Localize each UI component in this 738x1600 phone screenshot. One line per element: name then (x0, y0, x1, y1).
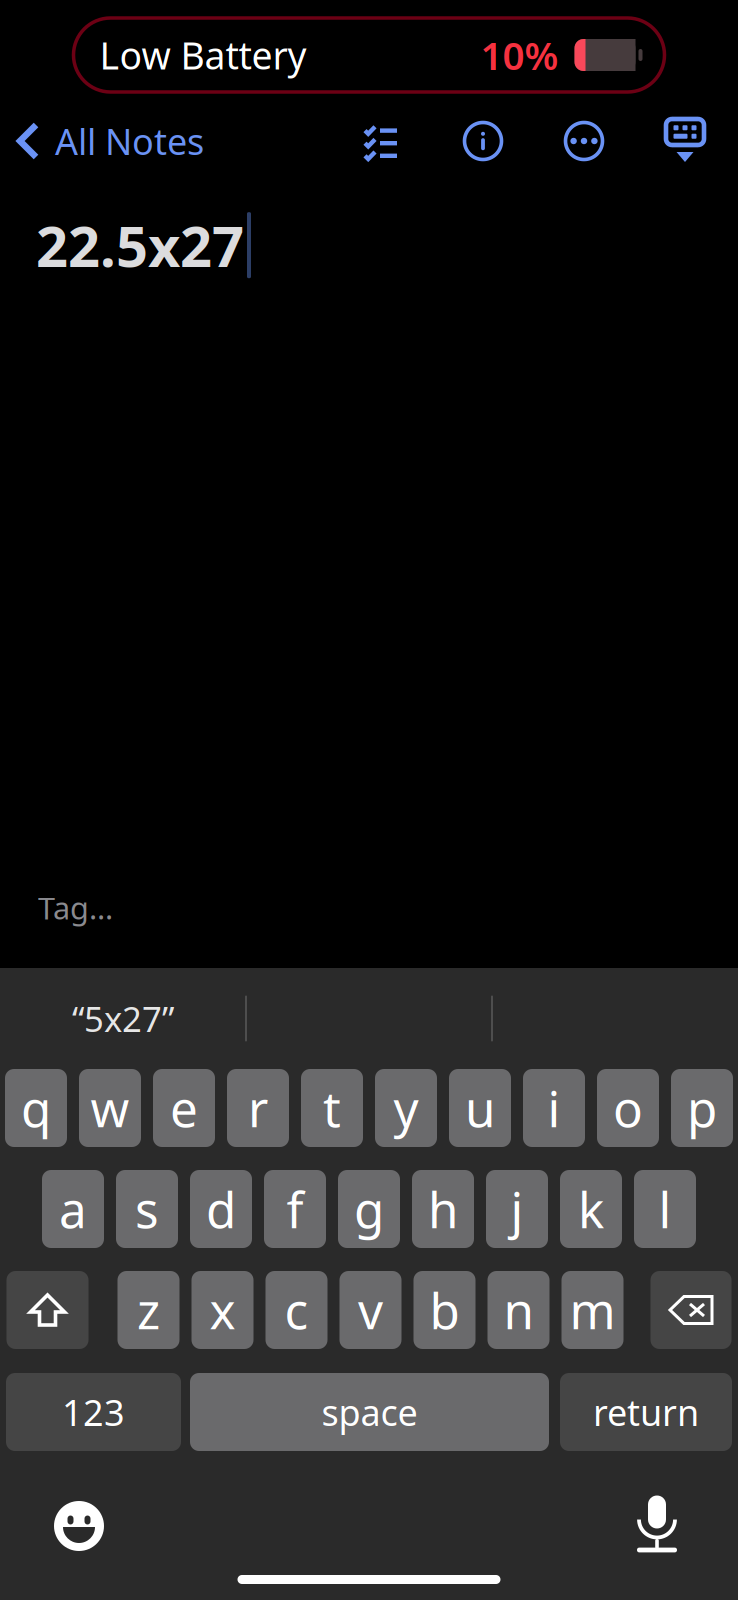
staticText: 10% (480, 29, 558, 81)
staticText: w (90, 1075, 129, 1141)
staticText: All Notes (55, 117, 204, 165)
staticText: n (503, 1277, 533, 1343)
staticText: Tag... (38, 887, 113, 928)
staticText: Low Battery (99, 30, 306, 80)
staticText: s (135, 1176, 159, 1242)
staticText: c (284, 1277, 308, 1343)
staticText: space (321, 1388, 417, 1436)
button[interactable]: Hide Keyboard (658, 114, 712, 168)
button[interactable]: k (560, 1170, 622, 1248)
button[interactable]: b (413, 1271, 475, 1349)
button[interactable]: j (486, 1170, 548, 1248)
staticText: g (354, 1176, 384, 1242)
staticText: i (547, 1075, 560, 1141)
button[interactable]: h (412, 1170, 474, 1248)
button[interactable]: z (117, 1271, 179, 1349)
staticText: 123 (62, 1388, 125, 1436)
staticText: v (358, 1277, 383, 1343)
button[interactable]: Shift (6, 1271, 88, 1349)
staticText: return (593, 1388, 699, 1436)
staticText: m (569, 1277, 615, 1343)
button[interactable]: a (42, 1170, 104, 1248)
button[interactable]: r (227, 1069, 289, 1147)
staticText: “5x27” (72, 995, 174, 1041)
staticText: o (613, 1075, 643, 1141)
button[interactable]: q (5, 1069, 67, 1147)
button[interactable]: y (375, 1069, 437, 1147)
button[interactable]: g (338, 1170, 400, 1248)
button[interactable]: Info (456, 114, 510, 168)
staticText: j (510, 1176, 523, 1242)
button[interactable]: f (264, 1170, 326, 1248)
button[interactable]: c (265, 1271, 327, 1349)
staticText: x (209, 1277, 235, 1343)
button[interactable]: w (79, 1069, 141, 1147)
staticText: f (286, 1176, 303, 1242)
staticText: d (206, 1176, 236, 1242)
staticText: q (21, 1075, 51, 1141)
button[interactable]: More (557, 114, 611, 168)
staticText: a (59, 1176, 87, 1242)
staticText: p (687, 1075, 717, 1141)
button[interactable]: l (634, 1170, 696, 1248)
button[interactable]: d (190, 1170, 252, 1248)
button[interactable]: space (190, 1373, 549, 1451)
staticText: u (465, 1075, 495, 1141)
staticText: z (137, 1277, 160, 1343)
button[interactable]: v (339, 1271, 401, 1349)
button[interactable]: i (523, 1069, 585, 1147)
button[interactable]: t (301, 1069, 363, 1147)
button[interactable]: Dictate (634, 1495, 680, 1557)
button[interactable]: Delete (650, 1271, 731, 1349)
staticText: l (658, 1176, 671, 1242)
staticText: b (429, 1277, 459, 1343)
button[interactable]: p (671, 1069, 733, 1147)
button[interactable]: n (487, 1271, 549, 1349)
button[interactable]: o (597, 1069, 659, 1147)
button[interactable]: 123 (6, 1373, 181, 1451)
button[interactable]: e (153, 1069, 215, 1147)
staticText: h (428, 1176, 458, 1242)
button[interactable]: Emoji (54, 1501, 104, 1551)
staticText: t (323, 1075, 341, 1141)
button[interactable]: All Notes (0, 111, 212, 171)
staticText: r (248, 1075, 268, 1141)
button[interactable]: Checklist (354, 114, 408, 168)
staticText: y (393, 1075, 418, 1141)
button[interactable]: return (560, 1373, 732, 1451)
staticText: e (170, 1075, 198, 1141)
button[interactable]: x (191, 1271, 253, 1349)
staticText: k (578, 1176, 604, 1242)
button[interactable]: m (561, 1271, 623, 1349)
button[interactable]: s (116, 1170, 178, 1248)
button[interactable]: u (449, 1069, 511, 1147)
staticText: 22.5x27 (36, 208, 244, 282)
